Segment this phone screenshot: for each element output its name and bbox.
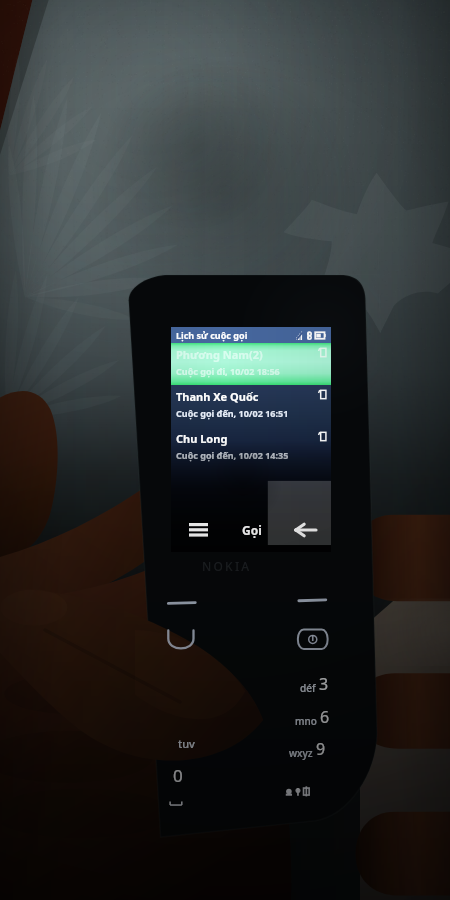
button[interactable]: Thanh Xe Quốc: [171, 385, 331, 427]
staticText: 9: [316, 738, 326, 760]
staticText: wxyz: [289, 746, 313, 760]
button[interactable]: Lịch sử cuộc gọi: [171, 327, 331, 343]
button[interactable]: Menu: [171, 508, 225, 552]
staticText: mno: [295, 714, 317, 728]
staticText: 0: [173, 764, 183, 787]
staticText: Chu Long: [176, 431, 228, 446]
staticText: NOKIA: [202, 558, 252, 574]
staticText: 3: [319, 673, 329, 695]
staticText: Thanh Xe Quốc: [176, 389, 259, 404]
staticText: Gọi: [242, 522, 262, 538]
button[interactable]: Chu Long: [171, 427, 331, 469]
staticText: Cuộc gọi đi, 10/02 18:56: [176, 365, 280, 377]
staticText: déf: [300, 681, 316, 695]
staticText: 6: [320, 706, 330, 728]
staticText: Phương Nam(2): [176, 347, 263, 362]
button[interactable]: Phương Nam(2): [171, 343, 331, 385]
staticText: tuv: [178, 736, 195, 751]
button[interactable]: Back: [278, 508, 331, 552]
staticText: Cuộc gọi đến, 10/02 16:51: [176, 407, 289, 419]
staticText: Lịch sử cuộc gọi: [176, 329, 248, 341]
button[interactable]: Gọi: [225, 508, 278, 552]
staticText: Cuộc gọi đến, 10/02 14:35: [176, 449, 289, 461]
